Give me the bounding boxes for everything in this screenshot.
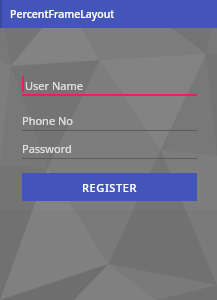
staticText: Password — [22, 141, 72, 156]
button[interactable]: User Name — [22, 74, 197, 96]
staticText: PercentFrameLayout — [10, 7, 115, 21]
button[interactable]: Phone No — [22, 110, 197, 131]
button[interactable]: Password — [22, 138, 197, 159]
staticText: REGISTER — [82, 180, 138, 195]
button[interactable]: REGISTER — [22, 173, 197, 201]
staticText: Phone No — [22, 113, 73, 128]
staticText: User Name — [25, 78, 83, 93]
